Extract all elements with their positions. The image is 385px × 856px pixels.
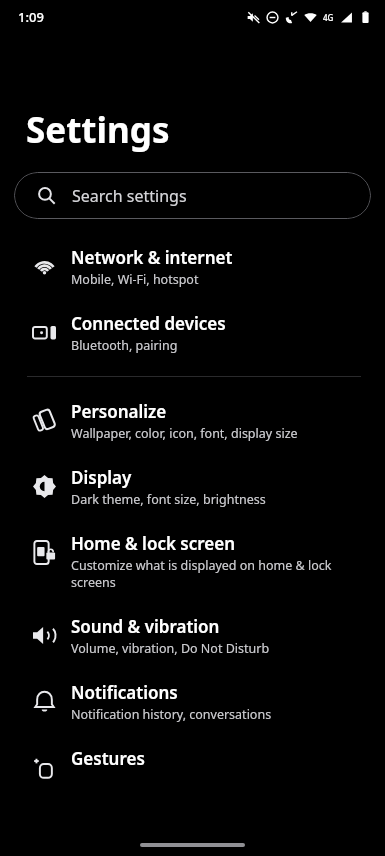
other: Sound and vibration	[33, 624, 56, 647]
button[interactable]: Search settings	[14, 172, 371, 219]
staticText: 4G	[323, 12, 334, 23]
staticText: Notification history, conversations	[71, 706, 272, 723]
button[interactable]: Personalize	[0, 399, 385, 442]
staticText: Mobile, Wi-Fi, hotspot	[71, 271, 199, 288]
button[interactable]: Network and internet	[0, 245, 385, 288]
staticText: Personalize	[71, 400, 167, 423]
staticText: Customize what is displayed on home & lo…	[71, 557, 369, 591]
staticText: Search settings	[72, 185, 187, 207]
button[interactable]: Notifications	[0, 680, 385, 723]
other: Notifications	[33, 690, 56, 713]
button[interactable]: Connected devices	[0, 311, 385, 354]
other: Connected devices	[33, 321, 56, 344]
staticText: Sound & vibration	[71, 615, 220, 638]
staticText: Display	[71, 466, 132, 489]
button[interactable]: Sound and vibration	[0, 614, 385, 657]
staticText: Volume, vibration, Do Not Disturb	[71, 640, 270, 657]
button[interactable]: Display	[0, 465, 385, 508]
other: Network and internet	[33, 255, 56, 278]
staticText: 1:09	[18, 8, 44, 26]
staticText: Home & lock screen	[71, 532, 236, 555]
other: Personalize	[33, 409, 56, 432]
button[interactable]: Gestures	[0, 746, 385, 788]
staticText: Gestures	[71, 747, 145, 770]
staticText: Network & internet	[71, 246, 233, 269]
staticText: Notifications	[71, 681, 178, 704]
other: Display	[33, 475, 56, 498]
other: Home and lock screen	[33, 541, 56, 564]
staticText: Dark theme, font size, brightness	[71, 491, 266, 508]
staticText: Settings	[26, 106, 170, 154]
staticText: Bluetooth, pairing	[71, 337, 178, 354]
staticText: Connected devices	[71, 312, 226, 335]
staticText: Wallpaper, color, icon, font, display si…	[71, 425, 298, 442]
button[interactable]: Home and lock screen	[0, 531, 385, 591]
other: Gestures	[33, 756, 56, 779]
